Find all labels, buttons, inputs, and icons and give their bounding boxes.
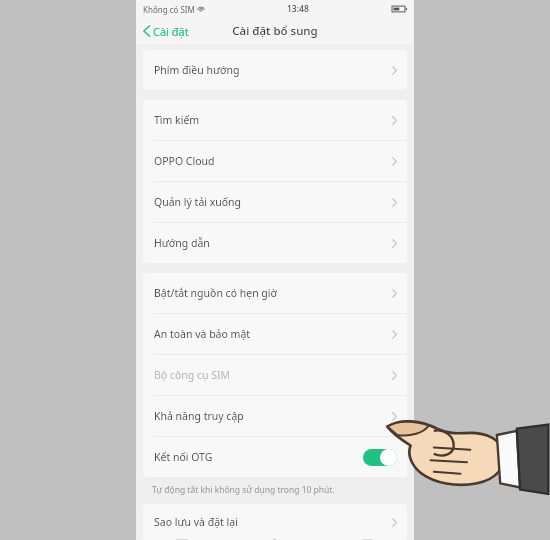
button[interactable]: Quản lý tải xuống xyxy=(143,182,407,222)
staticText: Sao lưu và đặt lại xyxy=(154,515,238,529)
staticText: OPPO Cloud xyxy=(154,154,215,168)
staticText: Phím điều hướng xyxy=(154,63,240,77)
button[interactable]: Sao lưu và đặt lại xyxy=(143,504,407,540)
staticText: Cài đặt bổ sung xyxy=(232,23,318,39)
button[interactable]: An toàn và bảo mật xyxy=(143,314,407,354)
staticText: Hướng dẫn xyxy=(154,236,210,250)
staticText: 13:48 xyxy=(287,3,309,15)
button[interactable]: Phím điều hướng xyxy=(143,50,407,90)
staticText: Tự động tắt khi không sử dụng trong 10 p… xyxy=(152,484,335,496)
staticText: Cài đặt xyxy=(153,24,189,39)
button[interactable]: Tìm kiếm xyxy=(143,100,407,140)
staticText: Quản lý tải xuống xyxy=(154,195,242,209)
button[interactable]: Khả năng truy cập xyxy=(143,396,407,436)
staticText: Kết nối OTG xyxy=(154,450,213,464)
staticText: An toàn và bảo mật xyxy=(154,327,251,341)
button[interactable]: Hướng dẫn xyxy=(143,223,407,263)
button[interactable]: OPPO Cloud xyxy=(143,141,407,181)
staticText: Tìm kiếm xyxy=(154,113,200,127)
button[interactable]: Kết nối OTG switch, on xyxy=(363,449,397,466)
button[interactable]: Bật/tắt nguồn có hẹn giờ xyxy=(143,273,407,313)
button[interactable]: Bộ công cụ SIM xyxy=(143,355,407,395)
staticText: Bật/tắt nguồn có hẹn giờ xyxy=(154,286,278,300)
button[interactable]: Kết nối OTG xyxy=(143,437,407,477)
staticText: Khả năng truy cập xyxy=(154,409,244,423)
staticText: Không có SIM xyxy=(143,4,195,15)
staticText: Bộ công cụ SIM xyxy=(154,368,231,382)
button[interactable]: Cài đặt xyxy=(136,18,195,44)
